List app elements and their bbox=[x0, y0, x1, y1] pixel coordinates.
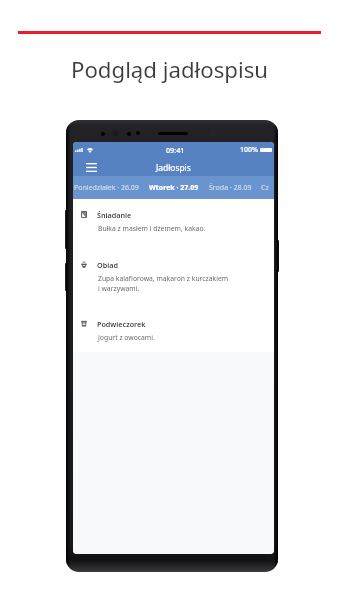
staticText: Jadłospis bbox=[156, 162, 191, 173]
button[interactable]: Obiad bbox=[73, 259, 274, 293]
button[interactable]: Wtorek · 27.09 bbox=[148, 178, 200, 198]
staticText: Zupa kalafiorowa, makaron z kurczakiem i… bbox=[98, 274, 229, 293]
staticText: Śniadanie bbox=[97, 210, 132, 220]
button[interactable]: Śniadanie bbox=[73, 209, 274, 233]
button[interactable]: Czwartek · 29.09 bbox=[261, 178, 274, 198]
staticText: 100% bbox=[240, 145, 258, 155]
staticText: Podgląd jadłospisu bbox=[71, 54, 269, 84]
staticText: Czwartek · 29.09 bbox=[261, 183, 274, 193]
button[interactable]: Poniedziałek · 26.09 bbox=[73, 178, 140, 198]
staticText: 09:41 bbox=[166, 145, 185, 155]
staticText: Podwieczorek bbox=[97, 319, 146, 329]
staticText: Środa · 28.09 bbox=[209, 183, 252, 193]
button[interactable]: Open navigation menu bbox=[82, 158, 100, 176]
button[interactable]: Środa · 28.09 bbox=[208, 178, 253, 198]
button[interactable]: Podwieczorek bbox=[73, 318, 274, 342]
staticText: Poniedziałek · 26.09 bbox=[74, 183, 139, 193]
staticText: Bułka z masłem i dżemem, kakao. bbox=[98, 224, 206, 233]
staticText: Jogurt z owocami. bbox=[98, 333, 155, 342]
staticText: Obiad bbox=[97, 260, 118, 270]
staticText: Wtorek · 27.09 bbox=[149, 183, 199, 193]
